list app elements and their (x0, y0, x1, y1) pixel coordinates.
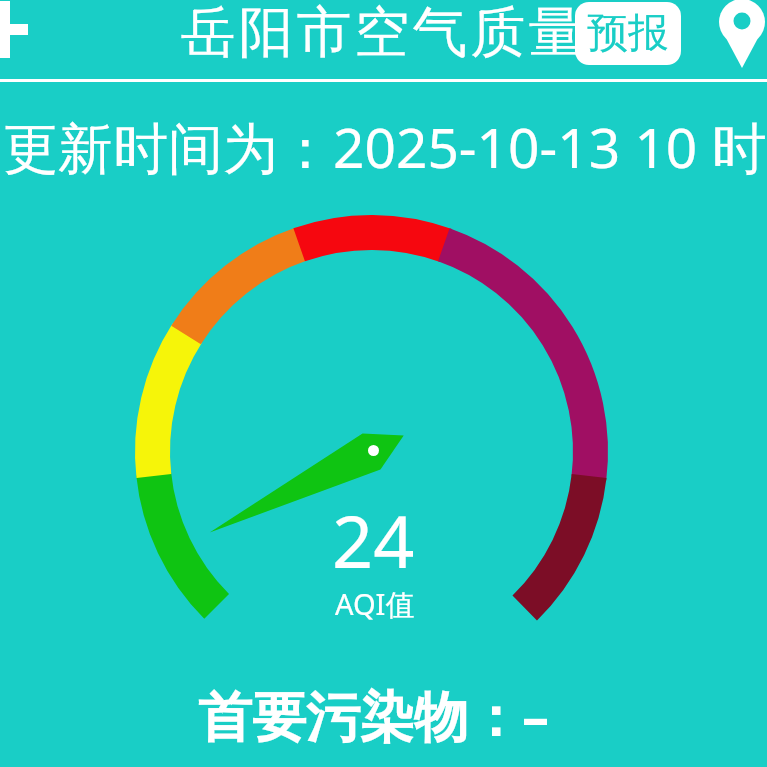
button[interactable] (715, 0, 767, 70)
staticText: AQI值 (335, 584, 415, 624)
staticText: 24 (332, 491, 415, 589)
staticText: 更新时间为：2025-10-13 10 时 (3, 109, 767, 184)
staticText: 预报 (587, 8, 669, 60)
staticText: 岳阳市空气质量 (179, 0, 585, 60)
button[interactable] (0, 0, 34, 62)
button[interactable]: 预报 (575, 2, 681, 65)
staticText: 首要污染物：– (198, 678, 549, 752)
